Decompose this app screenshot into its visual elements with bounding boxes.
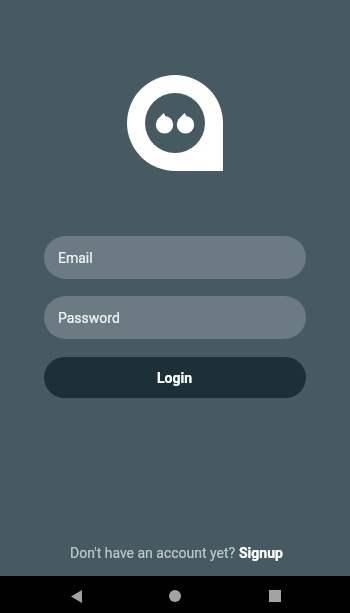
staticText: Email [58, 250, 93, 266]
button[interactable]: Recent apps [257, 578, 293, 613]
staticText: Signup [239, 545, 283, 561]
button[interactable]: Password [44, 296, 306, 339]
button[interactable]: Don't have an account yet? [64, 542, 289, 564]
button[interactable]: Home [157, 578, 193, 613]
button[interactable]: Back [58, 578, 94, 613]
staticText: Don't have an account yet? [70, 545, 239, 561]
button[interactable]: Email [44, 236, 306, 279]
button[interactable]: Login [44, 357, 306, 398]
staticText: Login [157, 370, 193, 386]
staticText: Password [58, 310, 120, 326]
